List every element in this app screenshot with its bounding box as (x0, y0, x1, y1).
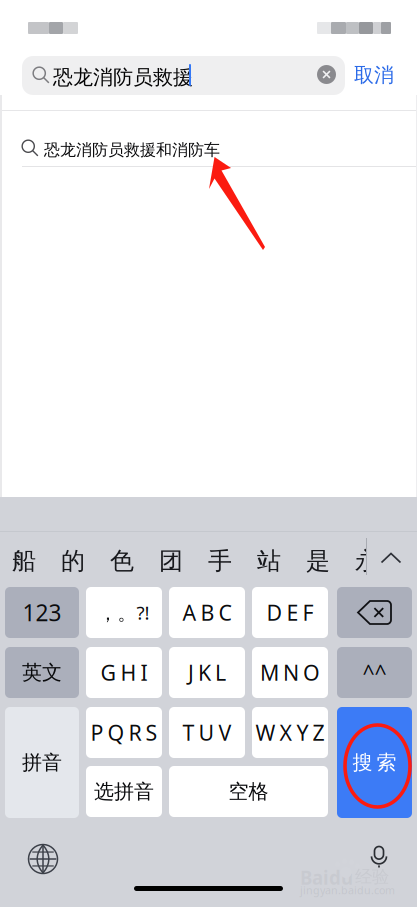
button[interactable]: 是 (300, 539, 336, 583)
staticText: Baidu (300, 865, 353, 890)
staticText: 空格 (228, 779, 268, 804)
button[interactable]: 搜 索 (337, 707, 412, 818)
staticText: 团 (159, 546, 183, 576)
staticText: 恐龙消防员救援 (53, 65, 193, 90)
staticText: 123 (22, 597, 61, 627)
button[interactable]: Next keyboard (21, 837, 65, 881)
button[interactable]: J K L (169, 647, 245, 698)
button[interactable]: 空格 (169, 766, 328, 817)
button[interactable]: 拼音 (5, 707, 79, 818)
staticText: jingyan.baidu.com (300, 883, 395, 897)
staticText: 船 (12, 546, 36, 576)
button[interactable]: 色 (104, 539, 140, 583)
staticText: 是 (306, 546, 330, 576)
button[interactable]: Clear text (317, 65, 336, 84)
button[interactable]: 英文 (5, 647, 79, 698)
staticText: W X Y Z (255, 718, 324, 747)
staticText: 站 (257, 546, 281, 576)
button[interactable]: P Q R S (86, 707, 162, 758)
button[interactable]: Dictate (361, 838, 397, 876)
staticText: A B C (182, 598, 231, 627)
staticText: 色 (110, 546, 134, 576)
staticText: 搜 索 (352, 750, 396, 775)
button[interactable]: T U V (169, 707, 245, 758)
staticText: ^^ (362, 658, 386, 687)
button[interactable]: G H I (86, 647, 162, 698)
button[interactable]: 永 (349, 539, 385, 583)
staticText: 英文 (22, 660, 62, 685)
button[interactable]: 取消 (352, 60, 396, 90)
button[interactable]: W X Y Z (252, 707, 328, 758)
button[interactable]: 团 (153, 539, 189, 583)
button[interactable]: 123 (5, 587, 79, 638)
staticText: 的 (61, 546, 85, 576)
button[interactable]: 船 (6, 539, 42, 583)
button[interactable]: ，。?! (86, 587, 162, 638)
staticText: 选拼音 (94, 779, 154, 804)
staticText: G H I (100, 658, 147, 687)
staticText: 永 (355, 546, 379, 576)
button[interactable]: 的 (55, 539, 91, 583)
button[interactable]: D E F (252, 587, 328, 638)
staticText: P Q R S (90, 718, 157, 747)
staticText: 恐龙消防员救援和消防车 (44, 140, 220, 160)
button[interactable]: 站 (251, 539, 287, 583)
staticText: 手 (208, 546, 232, 576)
button[interactable]: 选拼音 (86, 766, 162, 817)
staticText: T U V (182, 718, 231, 747)
button[interactable]: M N O (252, 647, 328, 698)
button[interactable]: More candidates (375, 542, 407, 574)
staticText: 取消 (354, 63, 394, 87)
staticText: 拼音 (22, 750, 62, 775)
staticText: 经验 (355, 866, 389, 887)
button[interactable]: A B C (169, 587, 245, 638)
button[interactable]: 手 (202, 539, 238, 583)
staticText: J K L (188, 658, 226, 687)
button[interactable]: ^^ (337, 647, 412, 698)
button[interactable]: 恐龙消防员救援和消防车 (0, 128, 417, 171)
button[interactable]: Delete (337, 587, 412, 638)
staticText: D E F (266, 598, 313, 627)
staticText: M N O (260, 658, 320, 687)
staticText: ，。?! (98, 600, 149, 625)
